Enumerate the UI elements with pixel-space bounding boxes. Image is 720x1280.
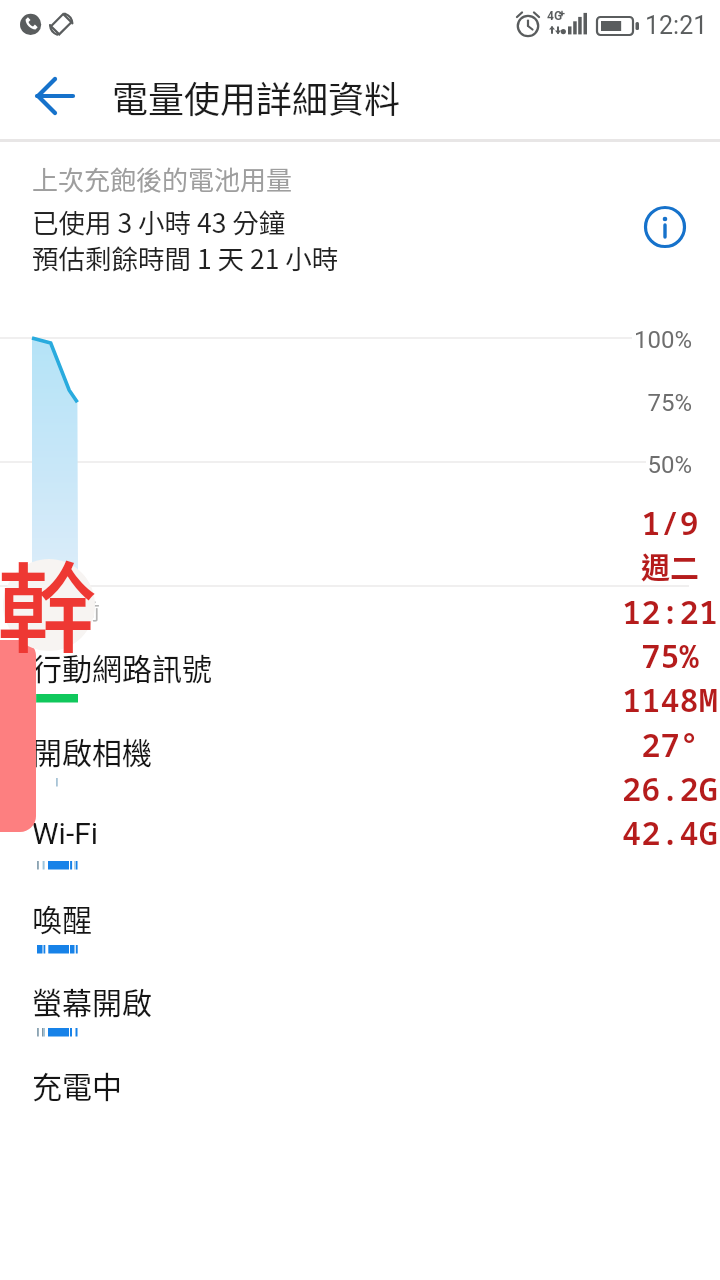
staticText: 週二 xyxy=(540,545,720,587)
staticText: 喚醒 xyxy=(32,896,92,939)
staticText: 螢幕開啟 xyxy=(32,979,152,1022)
staticText: 75% xyxy=(560,389,692,417)
staticText: 42.4G xyxy=(540,811,720,855)
staticText: 充電中 xyxy=(32,1063,122,1106)
staticText: 100% xyxy=(560,326,692,354)
button[interactable]: Side panel xyxy=(0,640,36,832)
staticText: 電量使用詳細資料 xyxy=(112,71,401,123)
button[interactable]: Info xyxy=(641,203,689,251)
staticText: 26.2G xyxy=(540,767,720,811)
staticText: + xyxy=(559,7,565,20)
button[interactable]: Back xyxy=(25,66,85,126)
staticText: 行動網路訊號 xyxy=(32,645,212,688)
staticText: Wi-Fi xyxy=(32,816,99,851)
button[interactable]: 螢幕開啟 xyxy=(0,979,720,1062)
staticText: 目前 xyxy=(58,595,100,625)
staticText: 4G xyxy=(547,9,563,23)
staticText: 75% xyxy=(540,634,720,678)
staticText: 1148M xyxy=(540,678,720,722)
staticText: 開啟相機 xyxy=(32,729,152,772)
staticText: 50% xyxy=(560,451,692,479)
staticText: 12:21 xyxy=(540,590,720,634)
button[interactable]: Wi-Fi xyxy=(0,812,720,895)
button[interactable]: 開啟相機 xyxy=(0,729,720,812)
staticText: 預估剩餘時間 1 天 21 小時 xyxy=(32,238,339,276)
staticText: 幹 xyxy=(0,531,97,653)
staticText: 1/9 xyxy=(540,501,720,545)
staticText: 12:21 xyxy=(645,11,708,40)
staticText: 已使用 3 小時 43 分鐘 xyxy=(32,202,286,240)
button[interactable]: Floating assistant xyxy=(3,559,95,651)
button[interactable]: 喚醒 xyxy=(0,896,720,979)
staticText: 上次充飽後的電池用量 xyxy=(32,160,293,198)
button[interactable]: 行動網路訊號 xyxy=(0,645,720,728)
staticText: 27° xyxy=(540,723,720,767)
button[interactable]: 充電中 xyxy=(0,1063,720,1146)
